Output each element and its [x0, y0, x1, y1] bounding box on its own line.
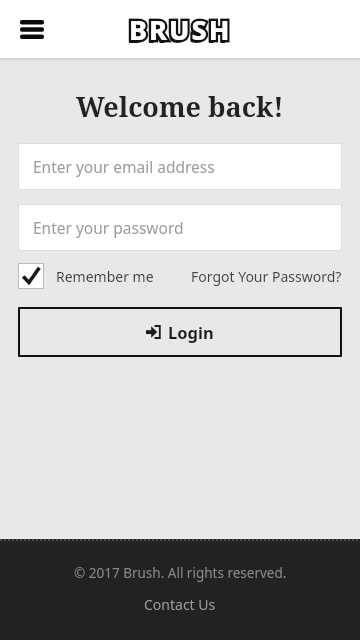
staticText: Login	[168, 321, 214, 343]
button[interactable]: Enter your email address	[18, 143, 342, 190]
button[interactable]: Forgot Your Password?	[191, 267, 342, 286]
staticText: Contact Us	[144, 595, 216, 614]
staticText: Welcome back!	[76, 88, 284, 125]
staticText: BRUSH	[129, 11, 232, 48]
staticText: Forgot Your Password?	[191, 267, 342, 286]
button[interactable]	[18, 263, 44, 289]
staticText: Remember me	[56, 267, 154, 286]
button[interactable]: Enter your password	[18, 204, 342, 251]
button[interactable]: Contact Us	[144, 595, 216, 614]
staticText: Enter your email address	[33, 156, 215, 177]
button[interactable]: Login	[18, 307, 342, 357]
staticText: © 2017 Brush. All rights reserved.	[74, 564, 287, 582]
staticText: Enter your password	[33, 217, 184, 238]
button[interactable]: BRUSH	[129, 11, 232, 48]
button[interactable]	[16, 13, 48, 45]
staticText: BRUSH	[127, 14, 230, 51]
staticText: BRUSH	[129, 11, 232, 48]
